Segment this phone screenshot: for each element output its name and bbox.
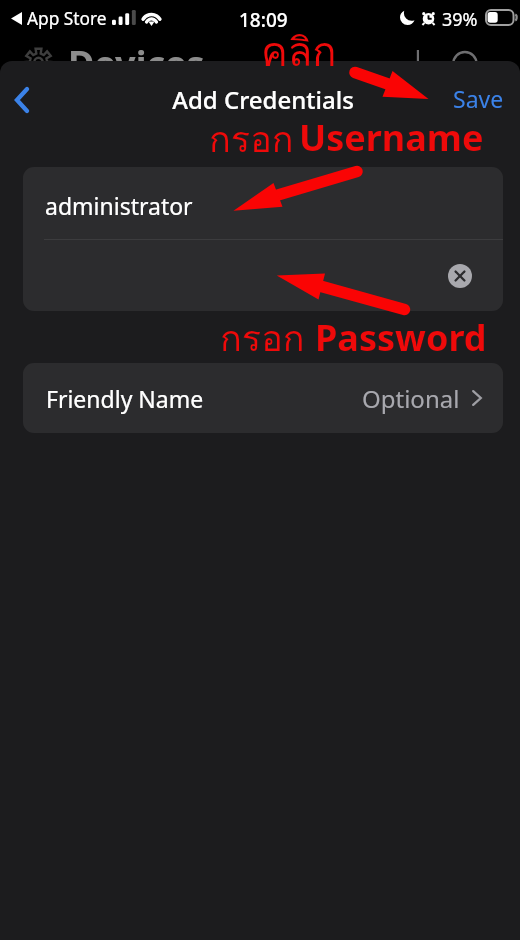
button[interactable]: Back: [4, 82, 40, 118]
staticText: App Store: [27, 7, 107, 31]
staticText: Username: [299, 113, 484, 162]
staticText: Optional: [362, 382, 460, 415]
staticText: administrator: [45, 190, 193, 221]
staticText: Password: [315, 313, 487, 362]
button[interactable]: Clear text: [448, 264, 472, 288]
staticText: Save: [453, 83, 504, 114]
staticText: Add Credentials: [3, 83, 520, 116]
staticText: คลิก: [261, 20, 337, 84]
staticText: Devices: [68, 39, 205, 88]
button[interactable]: administrator: [23, 167, 503, 239]
button[interactable]: Friendly Name: [23, 363, 503, 433]
staticText: กรอก: [209, 111, 294, 168]
staticText: Friendly Name: [46, 383, 204, 414]
staticText: 39%: [442, 7, 478, 32]
button[interactable]: Clear text: [23, 240, 503, 311]
staticText: 18:09: [239, 7, 288, 33]
button[interactable]: Save: [445, 80, 511, 116]
staticText: กรอก: [220, 310, 305, 367]
